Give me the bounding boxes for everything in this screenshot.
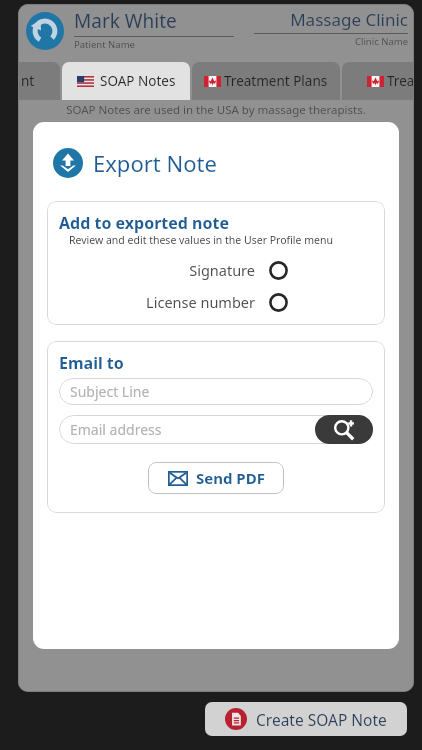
other: App logo xyxy=(24,10,66,52)
button[interactable]: Create SOAP Note xyxy=(205,702,407,736)
staticText: Export Note xyxy=(93,148,217,178)
staticText: Review and edit these values in the User… xyxy=(69,233,333,247)
button[interactable]: nt xyxy=(18,62,60,100)
staticText: Patient Name xyxy=(74,38,135,51)
staticText: SOAP Notes are used in the USA by massag… xyxy=(18,102,414,118)
button[interactable]: Treatn xyxy=(342,62,414,100)
staticText: Send PDF xyxy=(196,468,265,488)
staticText: Signature xyxy=(47,260,255,280)
button[interactable]: Treatment Plans xyxy=(192,62,340,100)
staticText: SOAP Notes xyxy=(100,72,176,90)
staticText: Email address xyxy=(70,420,162,439)
button[interactable]: License number xyxy=(47,287,385,317)
staticText: Treatment Plans xyxy=(224,72,328,90)
button[interactable]: Email address xyxy=(59,415,373,444)
staticText: Subject Line xyxy=(70,382,150,401)
button[interactable]: Send PDF xyxy=(148,462,284,494)
other: Export xyxy=(53,148,83,178)
button[interactable]: Subject Line xyxy=(59,378,373,405)
staticText: Email to xyxy=(59,352,124,374)
staticText: Create SOAP Note xyxy=(256,709,387,730)
staticText: Massage Clinic xyxy=(254,8,408,31)
button[interactable]: Pick contact xyxy=(315,415,373,444)
staticText: Treatn xyxy=(387,72,414,90)
button[interactable]: SOAP Notes xyxy=(62,62,190,100)
staticText: Add to exported note xyxy=(59,212,229,234)
staticText: License number xyxy=(47,292,255,312)
staticText: Clinic Name xyxy=(254,35,408,48)
staticText: nt xyxy=(21,72,35,90)
button[interactable]: Signature xyxy=(47,255,385,285)
staticText: Mark White xyxy=(74,8,177,34)
